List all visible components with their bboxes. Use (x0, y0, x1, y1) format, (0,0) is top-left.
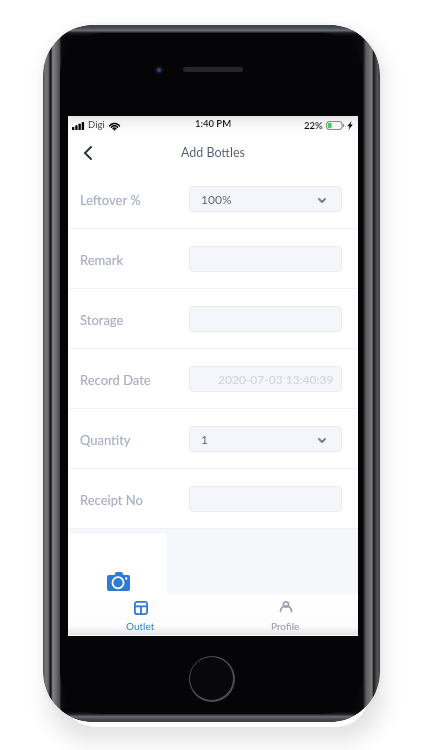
button[interactable]: Back (68, 136, 106, 169)
staticText: 100% (201, 192, 232, 206)
staticText: 22% (304, 120, 323, 131)
button[interactable]: Leftover % (68, 169, 358, 229)
staticText: Outlet (126, 620, 155, 632)
staticText: Storage (80, 312, 124, 328)
button[interactable]: Add photo (68, 534, 167, 595)
staticText: Digi (88, 119, 105, 130)
button[interactable]: Receipt No (68, 469, 358, 529)
staticText: 2020-07-03 13:40:39 (218, 372, 334, 386)
staticText: Leftover % (80, 192, 141, 208)
staticText: Quantity (80, 432, 131, 448)
button[interactable]: Record Date (68, 349, 358, 409)
staticText: Record Date (80, 372, 151, 388)
staticText: 1:40 PM (195, 118, 232, 129)
button[interactable]: Storage (68, 289, 358, 349)
button[interactable]: Quantity (68, 409, 358, 469)
button[interactable]: Remark (68, 229, 358, 289)
button[interactable]: Profile (213, 594, 358, 635)
staticText: 1 (201, 432, 208, 446)
staticText: Profile (271, 620, 300, 632)
staticText: Remark (80, 252, 124, 268)
button[interactable]: Outlet (68, 594, 213, 635)
staticText: Add Bottles (181, 145, 245, 160)
staticText: Receipt No (80, 492, 143, 508)
